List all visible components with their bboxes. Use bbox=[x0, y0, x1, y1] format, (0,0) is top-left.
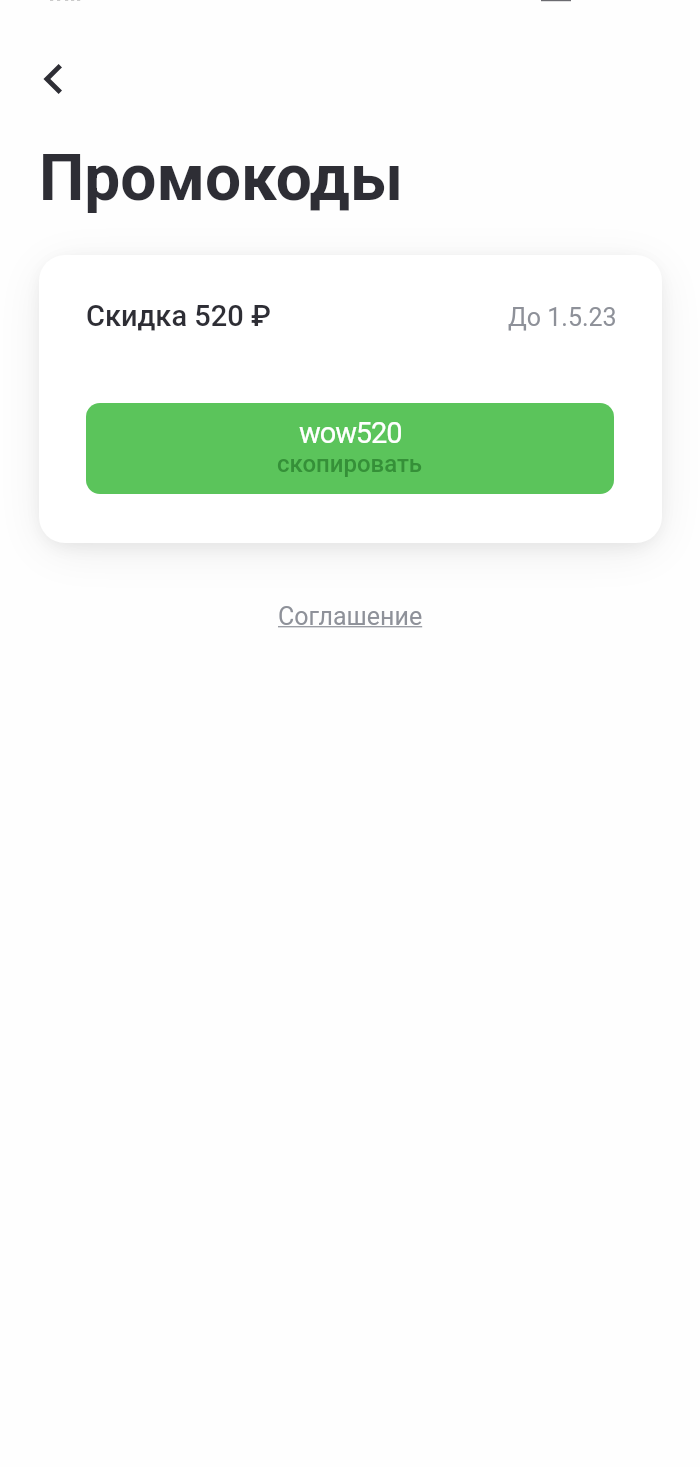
staticText: скопировать bbox=[277, 450, 423, 478]
staticText: До 1.5.23 bbox=[508, 303, 617, 332]
staticText: Скидка 520 ₽ bbox=[86, 299, 271, 333]
button[interactable]: wow520 bbox=[86, 403, 614, 494]
staticText: Соглашение bbox=[278, 602, 423, 631]
staticText: Промокоды bbox=[39, 141, 403, 216]
staticText: wow520 bbox=[299, 416, 402, 450]
button[interactable]: Back bbox=[24, 51, 80, 107]
button[interactable]: Соглашение bbox=[268, 590, 433, 643]
